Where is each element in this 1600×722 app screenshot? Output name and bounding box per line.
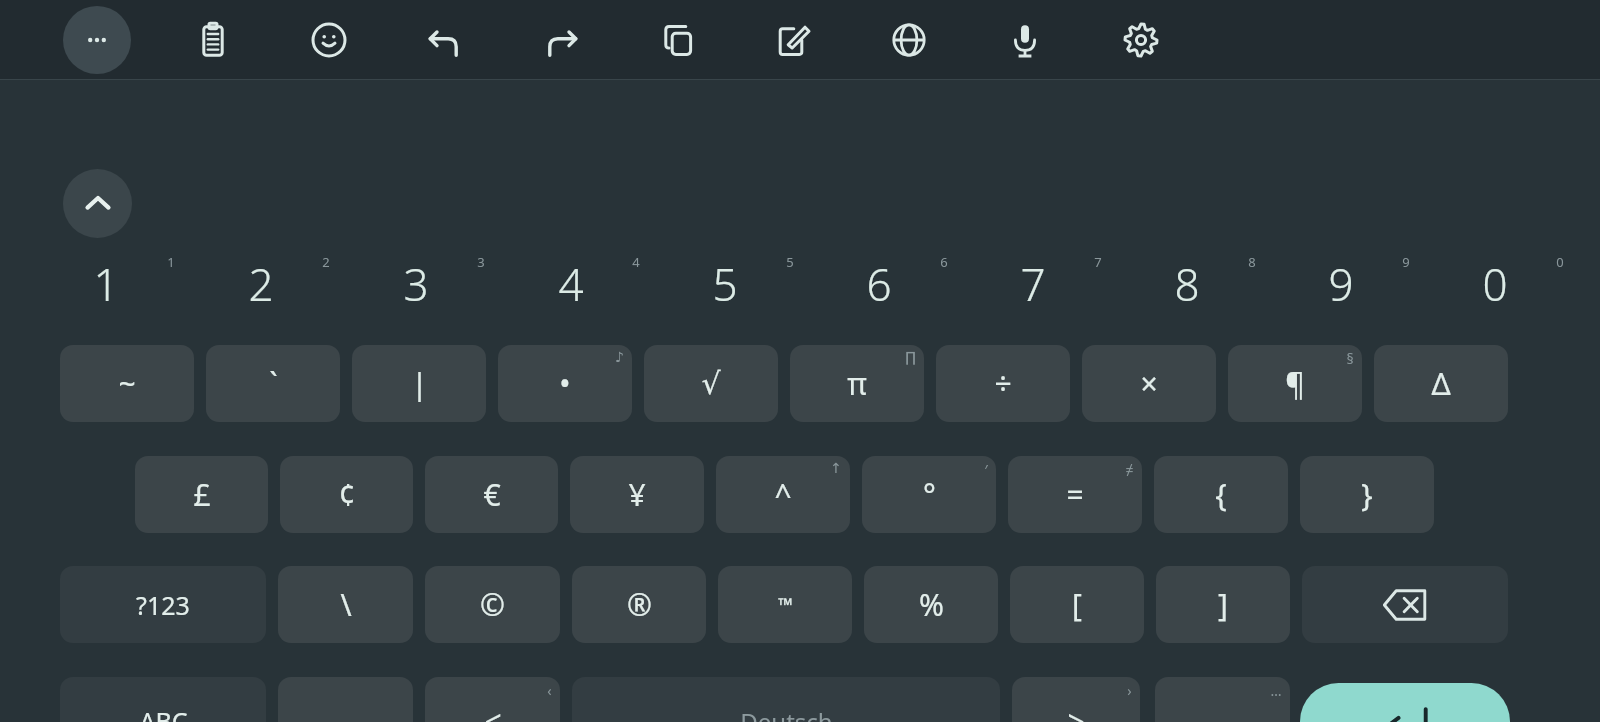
button[interactable]: } <box>1300 456 1434 533</box>
button[interactable]: | <box>352 345 486 422</box>
staticText: § <box>1346 349 1354 368</box>
button[interactable]: ° <box>862 456 996 533</box>
button[interactable]: ~ <box>60 345 194 422</box>
button[interactable]: √ <box>644 345 778 422</box>
button[interactable]: 6 <box>802 245 956 323</box>
button[interactable]: ABC <box>60 677 266 722</box>
button[interactable]: > <box>1012 677 1140 722</box>
button[interactable]: € <box>425 456 558 533</box>
staticText: ¥ <box>628 474 646 515</box>
button[interactable]: ™ <box>718 566 852 643</box>
staticText: 8 <box>1174 254 1200 314</box>
staticText: × <box>1140 363 1158 404</box>
button[interactable]: Emoji <box>295 6 363 74</box>
staticText: π <box>847 363 867 404</box>
staticText: ABC <box>139 704 188 722</box>
button[interactable]: 3 <box>338 245 493 323</box>
button[interactable]: Backspace <box>1302 566 1508 643</box>
staticText: ` <box>269 363 278 404</box>
button[interactable]: \ <box>278 566 413 643</box>
staticText: 5 <box>786 253 794 271</box>
button[interactable]: Change language <box>875 6 943 74</box>
staticText: ¢ <box>338 474 356 515</box>
staticText: ™ <box>778 592 793 618</box>
staticText: Δ <box>1431 363 1451 404</box>
button[interactable]: Redo <box>527 6 595 74</box>
staticText: ↑ <box>830 460 842 476</box>
staticText: > <box>1067 701 1085 722</box>
button[interactable]: 1 <box>28 245 183 323</box>
staticText: ¶ <box>1285 363 1305 404</box>
staticText: ] <box>1218 584 1228 625</box>
button[interactable]: ` <box>206 345 340 422</box>
staticText: £ <box>193 474 211 515</box>
staticText: 7 <box>1020 254 1046 314</box>
button[interactable]: £ <box>135 456 268 533</box>
button[interactable]: • <box>498 345 632 422</box>
button[interactable]: = <box>1008 456 1142 533</box>
staticText: ?123 <box>136 588 190 622</box>
button[interactable]: ¢ <box>280 456 413 533</box>
staticText: [ <box>1072 584 1082 625</box>
staticText: 2 <box>322 253 330 271</box>
staticText: ‹ <box>547 681 552 700</box>
button[interactable]: ^ <box>716 456 850 533</box>
staticText: 6 <box>866 254 892 314</box>
button[interactable]: © <box>425 566 560 643</box>
staticText: 0 <box>1556 253 1564 271</box>
staticText: 9 <box>1328 254 1354 314</box>
button[interactable]: ?123 <box>60 566 266 643</box>
staticText: 7 <box>1094 253 1102 271</box>
button[interactable]: ® <box>572 566 706 643</box>
button[interactable]: Clipboard <box>179 6 247 74</box>
button[interactable]: [ <box>1010 566 1144 643</box>
button[interactable]: Edit <box>759 6 827 74</box>
button[interactable]: Copy <box>643 6 711 74</box>
button[interactable]: π <box>790 345 924 422</box>
staticText: © <box>480 584 505 625</box>
staticText: ′ <box>984 460 988 479</box>
button[interactable]: 0 <box>1418 245 1572 323</box>
staticText: ^ <box>774 474 792 515</box>
staticText: • <box>559 363 571 404</box>
button[interactable]: < <box>425 677 560 722</box>
button[interactable]: More options <box>63 6 131 74</box>
staticText: 0 <box>1482 254 1508 314</box>
button[interactable]: % <box>864 566 998 643</box>
button[interactable]: × <box>1082 345 1216 422</box>
button[interactable]: Settings <box>1107 6 1175 74</box>
button[interactable]: Voice input <box>991 6 1059 74</box>
button[interactable]: ÷ <box>936 345 1070 422</box>
button[interactable]: Deutsch <box>572 677 1000 722</box>
button[interactable]: 5 <box>648 245 802 323</box>
staticText: ® <box>627 584 652 625</box>
staticText: 3 <box>403 254 429 314</box>
button[interactable]: ¥ <box>570 456 704 533</box>
button[interactable]: { <box>1154 456 1288 533</box>
staticText: 1 <box>93 254 119 314</box>
staticText: 9 <box>1402 253 1410 271</box>
button[interactable]: 4 <box>493 245 648 323</box>
staticText: … <box>1270 681 1282 700</box>
staticText: { <box>1215 474 1227 515</box>
button[interactable]: ] <box>1156 566 1290 643</box>
staticText: ÷ <box>994 363 1012 404</box>
staticText: √ <box>701 366 721 401</box>
button[interactable]: 8 <box>1110 245 1264 323</box>
staticText: 6 <box>940 253 948 271</box>
button[interactable]: . <box>1155 677 1290 722</box>
button[interactable]: Enter <box>1300 683 1510 722</box>
button[interactable]: 7 <box>956 245 1110 323</box>
button[interactable]: Δ <box>1374 345 1508 422</box>
button[interactable]: ¶ <box>1228 345 1362 422</box>
staticText: % <box>919 584 944 625</box>
button[interactable]: Hide toolbar <box>63 169 132 238</box>
button[interactable]: Undo <box>411 6 479 74</box>
button[interactable]: 2 <box>183 245 338 323</box>
staticText: › <box>1127 681 1132 700</box>
button[interactable]: 9 <box>1264 245 1418 323</box>
staticText: ♪ <box>615 349 624 365</box>
